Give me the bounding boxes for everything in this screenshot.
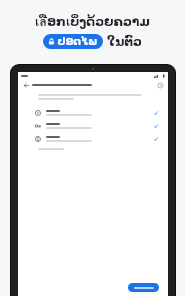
staticText: ໃນຕົວ: [107, 34, 142, 49]
staticText: เลືອກเບິ່ງດ້ວຍຄວາມ: [35, 12, 150, 32]
button[interactable]: [35, 132, 158, 145]
button[interactable]: ປອດໄພ: [48, 35, 98, 48]
button[interactable]: Back: [22, 81, 30, 89]
button[interactable]: [35, 119, 158, 132]
staticText: ປອດໄພ: [57, 35, 98, 48]
button[interactable]: [35, 106, 158, 119]
button[interactable]: Settings: [156, 81, 164, 89]
button[interactable]: [128, 283, 159, 292]
